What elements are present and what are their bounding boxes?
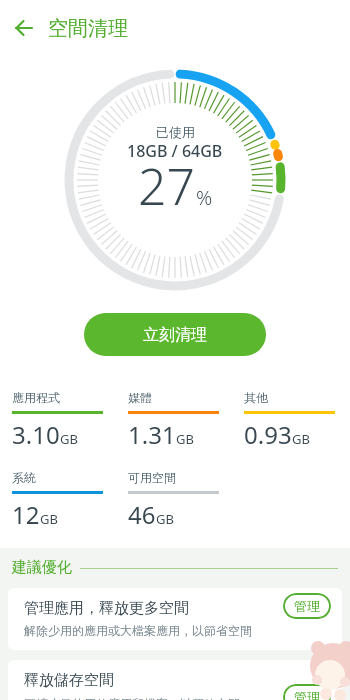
staticText: 應用程式: [12, 390, 60, 405]
staticText: 管理: [294, 598, 320, 614]
staticText: GB: [40, 510, 58, 528]
staticText: 媒體: [128, 390, 152, 405]
staticText: 釋放儲存空間: [24, 671, 114, 690]
staticText: %: [196, 184, 213, 211]
staticText: GB: [156, 510, 174, 528]
staticText: 其他: [244, 390, 268, 405]
staticText: GB: [176, 430, 194, 448]
staticText: 空間清理: [48, 16, 128, 41]
staticText: 已使用: [156, 124, 195, 140]
button[interactable]: 管理: [283, 593, 331, 619]
staticText: 管理應用，釋放更多空間: [24, 599, 189, 618]
staticText: 立刻清理: [143, 325, 207, 345]
staticText: 系統: [12, 470, 36, 485]
staticText: 0.93: [244, 418, 292, 451]
staticText: 管理: [294, 689, 320, 700]
staticText: 建議優化: [12, 558, 72, 577]
button[interactable]: [0, 4, 48, 52]
staticText: 解除少用的應用或大檔案應用，以節省空間: [24, 623, 252, 638]
staticText: 46: [128, 498, 156, 531]
button[interactable]: 管理: [283, 684, 331, 700]
staticText: 1.31: [128, 418, 176, 451]
button[interactable]: 管理應用，釋放更多空間: [8, 588, 342, 650]
staticText: 3.10: [12, 418, 60, 451]
staticText: 可用空間: [128, 470, 176, 485]
staticText: 18GB / 64GB: [127, 140, 223, 162]
button[interactable]: 釋放儲存空間: [8, 660, 342, 700]
staticText: GB: [292, 430, 310, 448]
staticText: GB: [60, 430, 78, 448]
staticText: 27: [138, 152, 196, 220]
button[interactable]: 立刻清理: [84, 313, 266, 356]
staticText: 12: [12, 498, 40, 531]
staticText: 壓縮少量使用的應用和檔案，以釋放空間: [24, 696, 240, 700]
